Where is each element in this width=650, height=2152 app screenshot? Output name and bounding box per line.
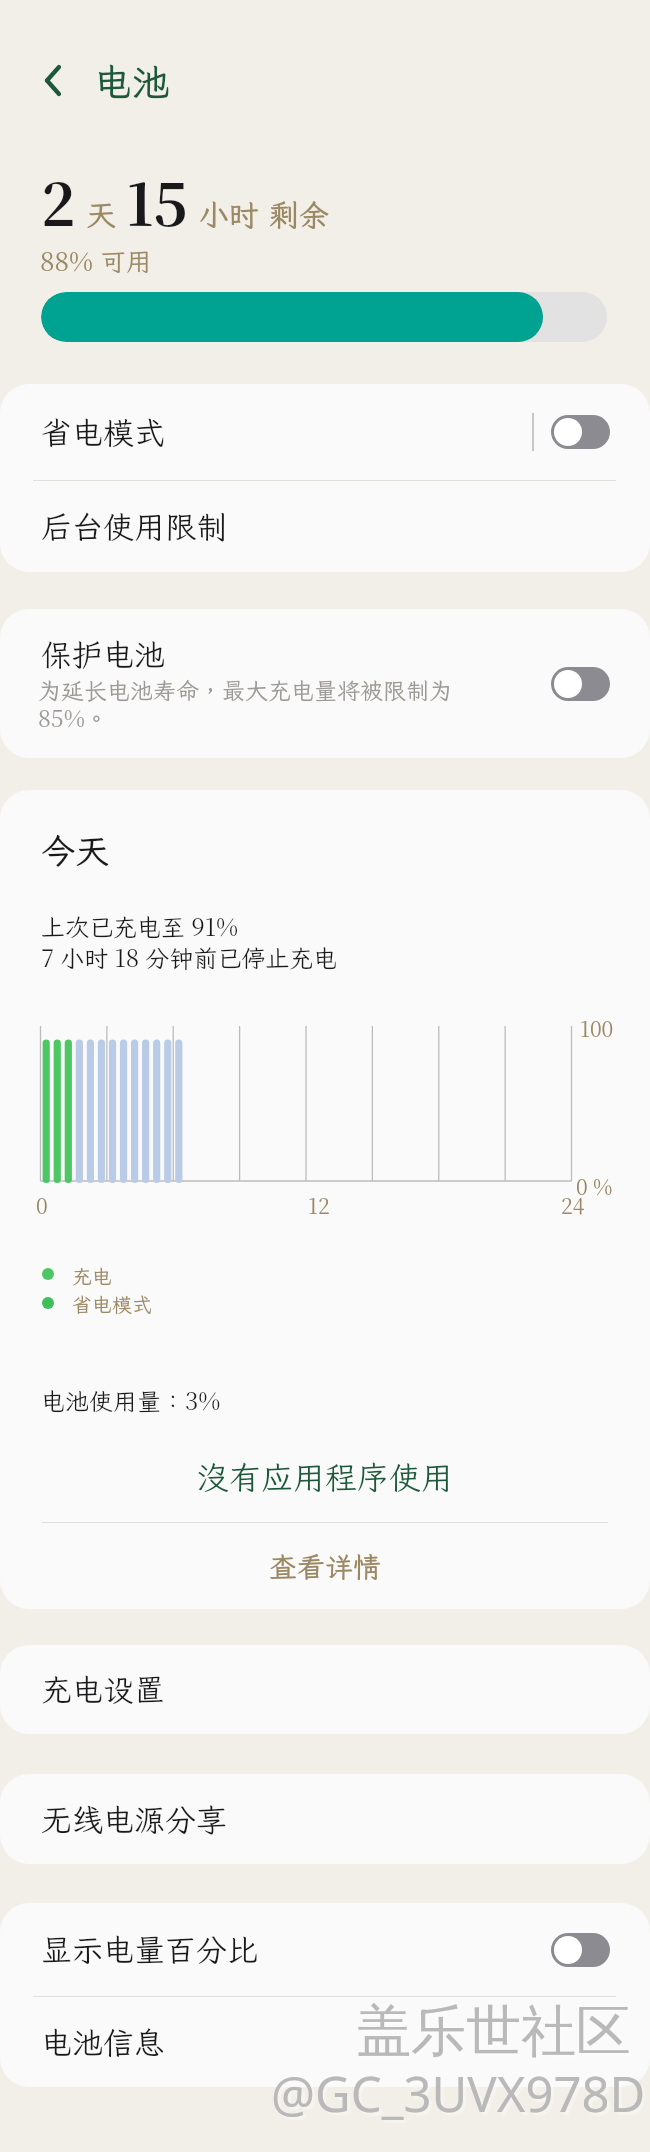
staticText: 充电 [72, 1263, 112, 1289]
staticText: 无线电源分享 [41, 1799, 227, 1840]
staticText: 24 [561, 1190, 585, 1220]
staticText: 没有应用程序使用 [197, 1456, 454, 1498]
staticText: 后台使用限制 [41, 506, 227, 547]
staticText: 查看详情 [269, 1548, 382, 1585]
staticText: 省电模式 [41, 412, 165, 453]
staticText: 2 天 15 小时 剩余 [41, 159, 329, 242]
staticText: 电池 [94, 57, 171, 107]
staticText: 7 小时 18 分钟前已停止充电 [41, 939, 338, 973]
staticText: 今天 [41, 828, 109, 873]
staticText: 88% 可用 [40, 241, 152, 278]
staticText: 0 [36, 1190, 48, 1220]
button[interactable]: 无线电源分享 [0, 1774, 650, 1864]
button[interactable]: 查看详情 [0, 1523, 650, 1609]
staticText: 电池使用量：3% [41, 1382, 221, 1416]
staticText: 充电设置 [41, 1669, 165, 1710]
staticText: 盖乐世社区 [359, 2000, 634, 2069]
button[interactable]: Back [29, 56, 77, 104]
staticText: @GC_3UVX978D [271, 2060, 646, 2127]
staticText: 电池信息 [41, 2022, 165, 2063]
staticText: 100 [580, 1013, 614, 1043]
staticText: 保护电池 [41, 634, 165, 675]
staticText: 为延长电池寿命，最大充电量将被限制为85%。 [38, 675, 458, 734]
button[interactable]: 省电模式 [0, 384, 650, 480]
staticText: @GC_3UVX978D [274, 2063, 649, 2130]
staticText: 省电模式 [72, 1291, 152, 1317]
staticText: 上次已充电至 91% [41, 908, 239, 942]
staticText: 盖乐世社区 [356, 1997, 631, 2066]
button[interactable]: 后台使用限制 [0, 481, 650, 572]
button[interactable]: 电池信息 [0, 1997, 650, 2087]
button[interactable]: 显示电量百分比 [0, 1903, 650, 1996]
button[interactable]: 充电设置 [0, 1645, 650, 1734]
staticText: 显示电量百分比 [41, 1929, 258, 1970]
button[interactable]: 保护电池 [0, 609, 650, 758]
staticText: 12 [308, 1190, 330, 1220]
staticText: 0 % [576, 1171, 613, 1201]
